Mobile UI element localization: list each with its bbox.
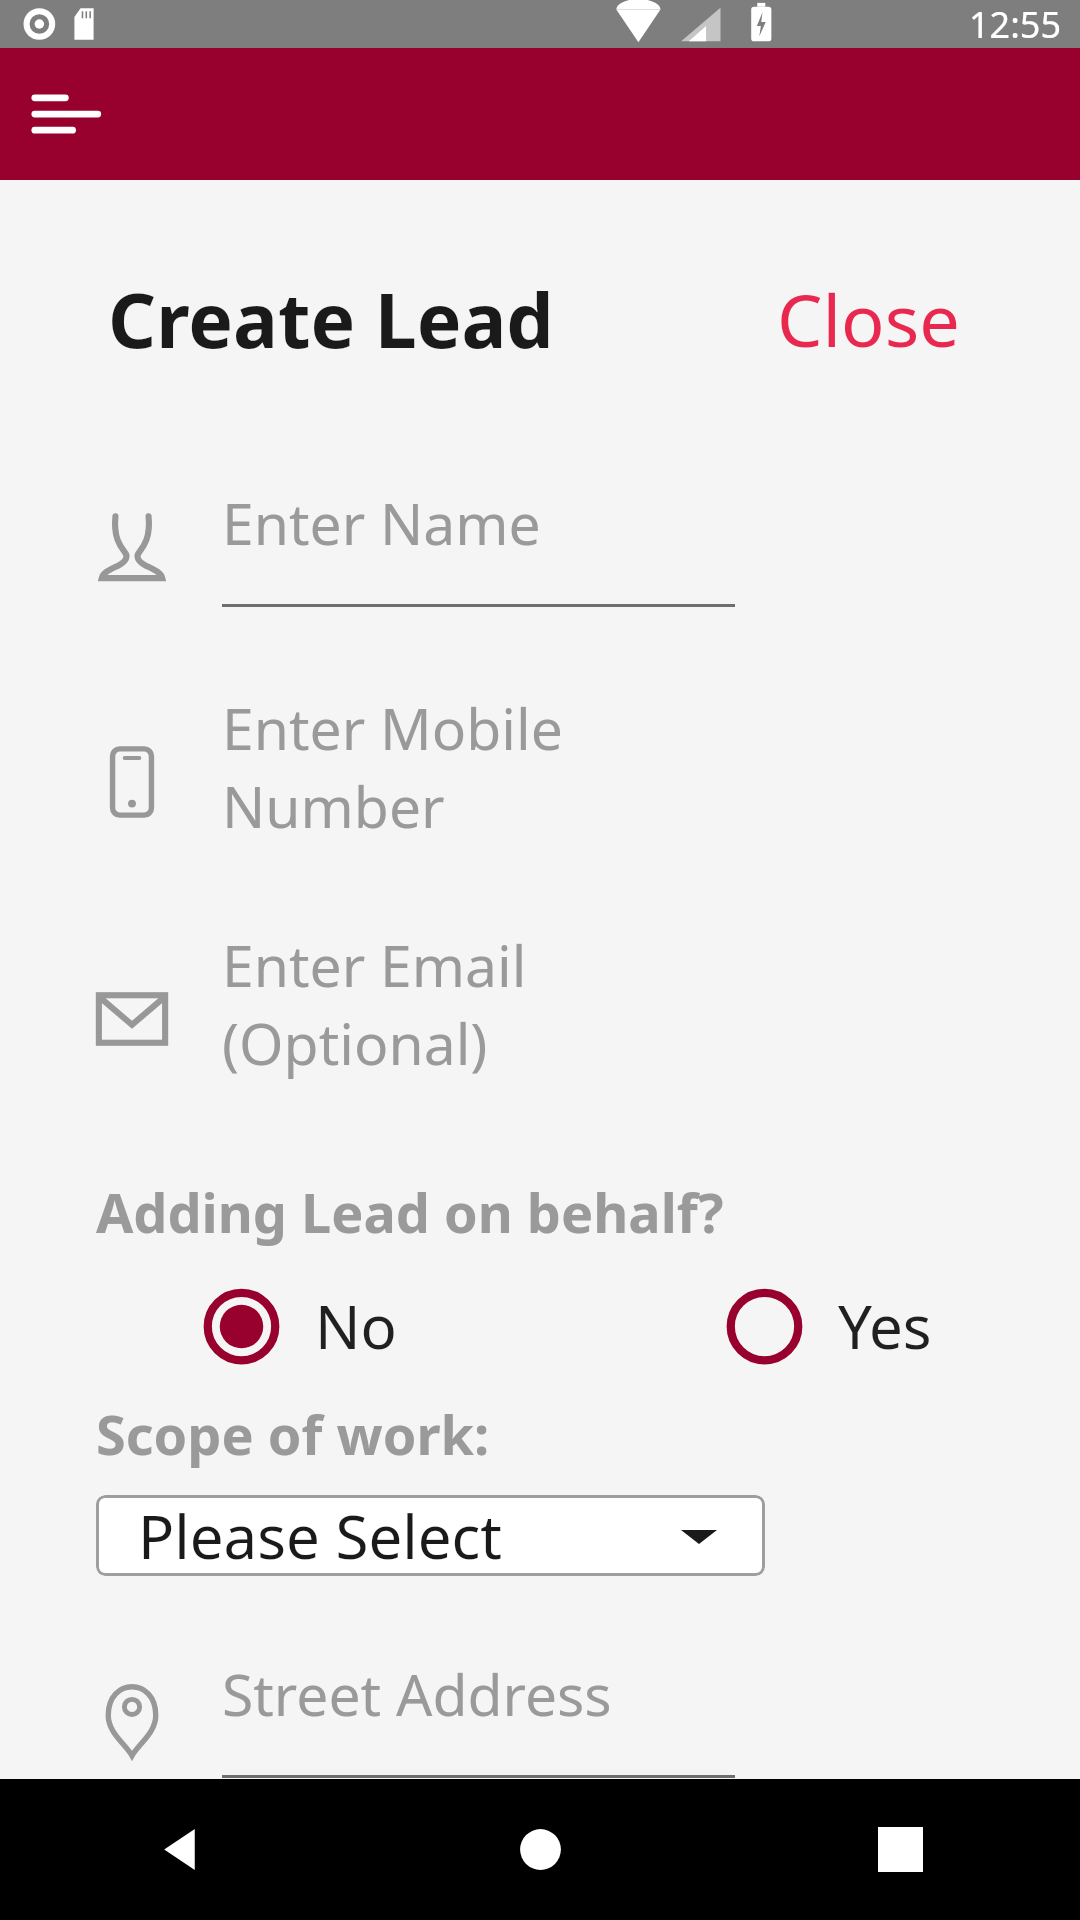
staticText: Enter Email (Optional) [222,926,735,1082]
button[interactable]: Enter Name [0,452,1080,638]
button[interactable]: Back [0,1779,360,1920]
staticText: Scope of work: [96,1397,490,1471]
staticText: Adding Lead on behalf? [96,1175,724,1249]
staticText: Enter Name [222,484,541,562]
staticText: Street Address [222,1655,612,1733]
staticText: No [315,1285,397,1367]
button[interactable]: Enter Email (Optional) [0,926,1080,1112]
button[interactable]: Home [360,1779,720,1920]
button[interactable]: Please Select [96,1495,765,1576]
button[interactable]: No [204,1285,397,1367]
staticText: Yes [838,1285,932,1367]
button[interactable]: Recents [720,1779,1080,1920]
staticText: Create Lead [108,268,554,370]
button[interactable]: Street Address [0,1654,1080,1779]
button[interactable]: Yes [727,1285,932,1367]
button[interactable]: Close [765,258,972,380]
button[interactable]: Menu [24,69,114,159]
staticText: 12:55 [969,0,1062,48]
button[interactable]: Enter Mobile Number [0,689,1080,875]
staticText: Please Select [138,1495,503,1576]
staticText: Enter Mobile Number [222,689,735,845]
staticText: Close [777,270,960,368]
